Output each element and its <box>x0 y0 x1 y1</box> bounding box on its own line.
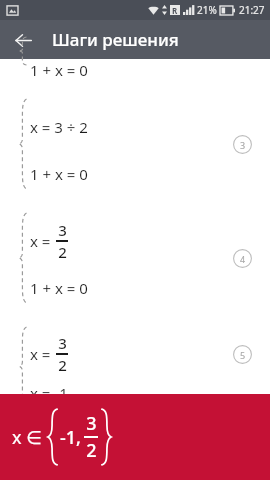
staticText: Шаги решения <box>52 28 179 51</box>
button[interactable]: x = 3 ÷ 2 <box>0 87 270 201</box>
staticText: 21:27 <box>239 3 265 17</box>
staticText: -1, <box>60 425 81 450</box>
staticText: 3 <box>58 220 67 240</box>
button[interactable]: x = <box>0 201 270 315</box>
staticText: 2 <box>86 438 97 463</box>
staticText: R <box>172 5 178 15</box>
staticText: x = -1 <box>30 383 68 403</box>
staticText: 1 + x = 0 <box>30 60 88 80</box>
staticText: 5 <box>240 349 246 361</box>
staticText: 2 <box>58 355 67 375</box>
staticText: x = 3 ÷ 2 <box>30 117 88 137</box>
staticText: x ∈ <box>12 425 47 450</box>
button[interactable]: Back <box>6 23 40 57</box>
staticText: 21% <box>197 3 217 17</box>
staticText: 3 <box>86 411 97 436</box>
button[interactable]: x ∈ <box>0 394 270 480</box>
staticText: 4 <box>240 253 246 265</box>
staticText: 2 <box>58 242 67 262</box>
staticText: 3 <box>240 139 246 151</box>
staticText: x = <box>30 231 55 251</box>
staticText: 1 + x = 0 <box>30 278 88 298</box>
staticText: 3 <box>58 333 67 353</box>
button[interactable]: x = <box>0 315 270 394</box>
button[interactable]: 1 + x = 0 <box>0 59 270 87</box>
staticText: 1 + x = 0 <box>30 164 88 184</box>
staticText: x = <box>30 344 55 364</box>
